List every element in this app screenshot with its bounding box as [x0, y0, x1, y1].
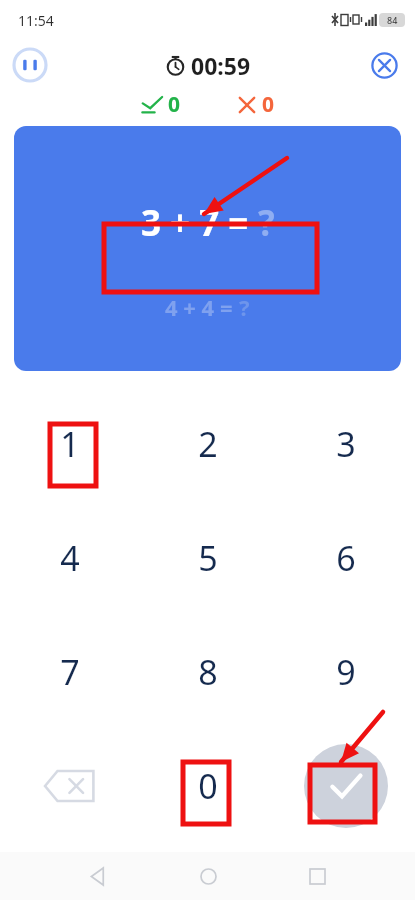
- button[interactable]: 9: [308, 634, 384, 710]
- staticText: 1: [60, 421, 80, 467]
- staticText: 0: [198, 763, 218, 809]
- staticText: 5: [198, 535, 218, 581]
- button[interactable]: 1: [32, 406, 108, 482]
- staticText: 6: [336, 535, 356, 581]
- button[interactable]: 6: [308, 520, 384, 596]
- staticText: 3: [336, 421, 356, 467]
- button[interactable]: 5: [170, 520, 246, 596]
- button[interactable]: Back: [78, 856, 118, 896]
- button[interactable]: 7: [32, 634, 108, 710]
- button[interactable]: Delete: [32, 748, 108, 824]
- button[interactable]: 8: [170, 634, 246, 710]
- staticText: 4: [60, 535, 80, 581]
- button[interactable]: 3: [308, 406, 384, 482]
- staticText: 0: [262, 90, 275, 119]
- button[interactable]: Recents: [297, 856, 337, 896]
- button[interactable]: Home: [188, 856, 228, 896]
- staticText: 00:59: [191, 50, 251, 81]
- button[interactable]: 4: [32, 520, 108, 596]
- staticText: 84: [387, 14, 398, 26]
- staticText: 4 + 4 =: [165, 292, 239, 322]
- staticText: ?: [239, 292, 250, 322]
- button[interactable]: 3 + 7 =: [14, 126, 401, 371]
- button[interactable]: Pause: [12, 47, 48, 83]
- staticText: 0: [168, 90, 181, 119]
- staticText: 3 + 7 =: [141, 199, 258, 247]
- button[interactable]: Submit answer: [304, 744, 388, 828]
- button[interactable]: Close: [367, 48, 401, 82]
- button[interactable]: 2: [170, 406, 246, 482]
- staticText: ?: [258, 199, 275, 247]
- staticText: 11:54: [18, 11, 54, 30]
- staticText: 9: [336, 649, 356, 695]
- staticText: 8: [198, 649, 218, 695]
- staticText: 2: [198, 421, 218, 467]
- button[interactable]: 0: [170, 748, 246, 824]
- staticText: 7: [60, 649, 80, 695]
